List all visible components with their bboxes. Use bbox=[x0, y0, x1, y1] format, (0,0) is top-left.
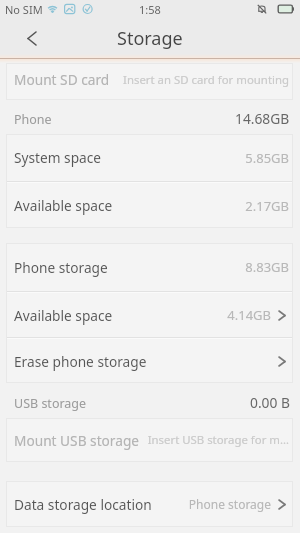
staticText: 4.14GB bbox=[227, 306, 271, 324]
button[interactable]: Mount USB storage bbox=[6, 418, 293, 462]
staticText: 1:58 bbox=[139, 2, 161, 17]
staticText: Mount SD card bbox=[14, 70, 110, 89]
button[interactable]: Available space bbox=[6, 183, 293, 228]
button[interactable]: Available space bbox=[6, 293, 293, 337]
staticText: Phone bbox=[14, 111, 52, 128]
staticText: 8.83GB bbox=[245, 258, 289, 276]
staticText: 14.68GB bbox=[235, 109, 290, 128]
staticText: Data storage location bbox=[14, 495, 152, 514]
staticText: 0.00 B bbox=[250, 393, 290, 412]
button[interactable]: Erase phone storage bbox=[6, 339, 293, 383]
staticText: USB storage bbox=[14, 395, 87, 412]
staticText: Insert USB storage for m… bbox=[147, 432, 289, 448]
staticText: Erase phone storage bbox=[14, 352, 147, 371]
button[interactable]: Back bbox=[0, 18, 63, 58]
staticText: No SIM bbox=[5, 2, 43, 17]
button[interactable]: Data storage location bbox=[6, 481, 293, 527]
staticText: System space bbox=[14, 148, 102, 167]
staticText: 2.17GB bbox=[245, 197, 289, 215]
staticText: Phone storage bbox=[14, 258, 108, 277]
button[interactable]: Phone storage bbox=[6, 243, 293, 291]
staticText: 5.85GB bbox=[245, 149, 289, 167]
staticText: Available space bbox=[14, 196, 113, 215]
staticText: Mount USB storage bbox=[14, 431, 140, 450]
staticText: Available space bbox=[14, 306, 113, 325]
staticText: Insert an SD card for mounting bbox=[123, 72, 289, 88]
staticText: Phone storage bbox=[188, 496, 271, 512]
button[interactable]: System space bbox=[6, 134, 293, 181]
button[interactable]: Mount SD card bbox=[6, 63, 293, 96]
staticText: Storage bbox=[117, 26, 183, 51]
